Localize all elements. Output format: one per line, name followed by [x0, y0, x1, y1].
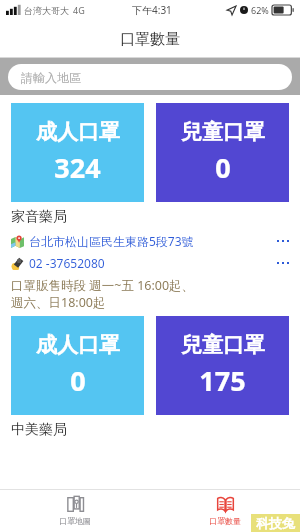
staticText: 下午4:31 [132, 3, 172, 17]
other: 口罩地圖 [67, 496, 84, 513]
staticText: 324 [54, 149, 101, 186]
staticText: 0 [70, 362, 86, 399]
button[interactable]: 口罩數量 [150, 490, 300, 532]
staticText: 台北市松山區民生東路5段73號 [29, 233, 194, 249]
staticText: 0 [215, 149, 231, 186]
button[interactable]: More [277, 240, 289, 242]
button[interactable]: 口罩地圖 [0, 490, 150, 532]
staticText: 口罩地圖 [59, 516, 91, 526]
staticText: 週六、日18:00起 [11, 294, 106, 311]
other: Phone [11, 257, 24, 270]
staticText: 台湾大哥大 [24, 5, 69, 16]
button[interactable]: Map [0, 233, 300, 249]
staticText: 科技兔 [256, 515, 295, 531]
staticText: 口罩販售時段 週一~五 16:00起、 [11, 277, 195, 294]
staticText: 成人口罩 [36, 332, 120, 358]
button[interactable]: 請輸入地區 [8, 64, 292, 90]
staticText: 兒童口罩 [181, 332, 265, 358]
other: 口罩數量 [217, 496, 234, 513]
button[interactable]: More [277, 262, 289, 264]
other: Map [11, 235, 24, 248]
button[interactable]: 兒童口罩 [156, 103, 289, 202]
staticText: 成人口罩 [36, 119, 120, 145]
staticText: 175 [199, 362, 246, 399]
button[interactable]: Phone [0, 255, 300, 271]
button[interactable]: 兒童口罩 [156, 316, 289, 415]
staticText: 請輸入地區 [21, 70, 81, 85]
staticText: 口罩數量 [209, 516, 241, 526]
button[interactable]: 成人口罩 [11, 316, 144, 415]
staticText: 中美藥局 [11, 421, 67, 439]
staticText: 4G [73, 4, 85, 16]
staticText: 口罩數量 [120, 30, 180, 49]
staticText: 62% [251, 4, 269, 16]
staticText: 兒童口罩 [181, 119, 265, 145]
staticText: 家音藥局 [11, 208, 67, 226]
button[interactable]: 成人口罩 [11, 103, 144, 202]
staticText: 02 -37652080 [29, 255, 105, 271]
